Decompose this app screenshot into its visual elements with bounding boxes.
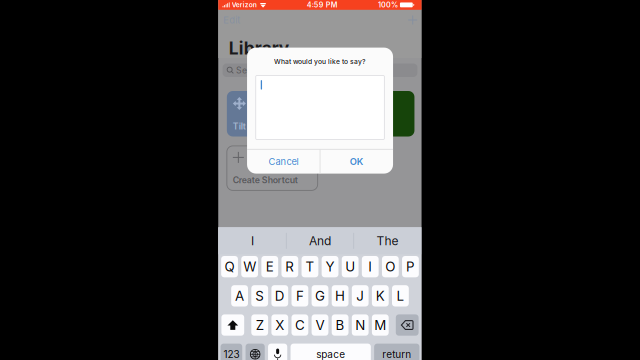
button[interactable]: Delete [396, 314, 419, 336]
staticText: 123 [223, 348, 239, 360]
staticText: Y [325, 259, 334, 275]
staticText: Edit [223, 14, 240, 26]
staticText: return [382, 348, 411, 360]
staticText: Library [229, 38, 289, 59]
button[interactable]: A [231, 285, 248, 306]
button[interactable]: D [271, 285, 288, 306]
button[interactable]: Edit [218, 14, 245, 26]
staticText: And [309, 233, 331, 248]
staticText: B [336, 317, 345, 333]
button[interactable]: I [362, 256, 379, 277]
button[interactable]: 123 [221, 344, 242, 360]
staticText: What would you like to say? [274, 58, 366, 66]
button[interactable]: X [271, 314, 288, 336]
staticText: E [266, 259, 274, 275]
button[interactable]: T [301, 256, 318, 277]
staticText: H [335, 288, 345, 304]
button[interactable]: The [354, 227, 421, 254]
button[interactable]: J [352, 285, 369, 306]
staticText: J [356, 288, 364, 304]
staticText: W [243, 259, 256, 275]
staticText: Cancel [268, 156, 298, 167]
staticText: OK [350, 156, 364, 167]
button[interactable]: H [332, 285, 348, 306]
button[interactable]: L [392, 285, 409, 306]
staticText: T [305, 259, 314, 275]
button[interactable]: W [241, 256, 258, 277]
button[interactable]: P [402, 256, 419, 277]
button[interactable]: B [332, 314, 348, 336]
button[interactable]: And [287, 227, 353, 254]
staticText: Tilt Screen [233, 121, 277, 131]
staticText: I [251, 233, 254, 248]
button[interactable]: Cancel [247, 150, 320, 174]
staticText: Verizon [232, 1, 257, 9]
button[interactable]: N [352, 314, 369, 336]
button[interactable]: C [291, 314, 308, 336]
staticText: R [285, 259, 294, 275]
button[interactable]: OK [320, 150, 393, 174]
button[interactable]: G [312, 285, 328, 306]
button[interactable]: M [372, 314, 389, 336]
button[interactable]: Add shortcut [404, 14, 422, 26]
staticText: 100% [378, 0, 398, 9]
button[interactable]: space [291, 344, 371, 360]
staticText: S [255, 288, 264, 304]
staticText: Create Shortcut [233, 175, 298, 185]
staticText: C [295, 317, 305, 333]
button[interactable]: Shift [221, 314, 244, 336]
button[interactable]: return [374, 344, 419, 360]
button[interactable]: Dictation [268, 344, 287, 360]
staticText: space [316, 348, 345, 360]
button[interactable]: Create Shortcut [227, 146, 318, 190]
staticText: O [385, 259, 395, 275]
staticText: G [315, 288, 325, 304]
button[interactable]: Record Audio [324, 91, 414, 136]
staticText: M [374, 317, 386, 333]
staticText: I [368, 259, 372, 275]
staticText: Z [256, 317, 264, 333]
button[interactable]: E [261, 256, 278, 277]
button[interactable]: K [372, 285, 389, 306]
staticText: V [315, 317, 324, 333]
staticText: Search [236, 65, 265, 75]
button[interactable]: Z [251, 314, 268, 336]
button[interactable]: Change keyboard [246, 344, 265, 360]
staticText: X [275, 317, 284, 333]
button[interactable]: V [312, 314, 328, 336]
button[interactable]: Y [322, 256, 338, 277]
button[interactable]: O [382, 256, 399, 277]
button[interactable]: S [251, 285, 268, 306]
button[interactable]: F [291, 285, 308, 306]
button[interactable]: I [219, 227, 286, 254]
button[interactable]: U [342, 256, 359, 277]
staticText: L [396, 288, 404, 304]
button[interactable]: Tilt Screen [227, 91, 318, 136]
staticText: A [235, 288, 244, 304]
staticText: The [376, 233, 398, 248]
button[interactable]: R [281, 256, 298, 277]
staticText: U [345, 259, 355, 275]
staticText: K [376, 288, 385, 304]
staticText: D [275, 288, 285, 304]
staticText: F [296, 288, 304, 304]
staticText: P [406, 259, 415, 275]
staticText: 4:59 PM [307, 0, 338, 9]
staticText: N [355, 317, 365, 333]
staticText: Q [224, 259, 234, 275]
button[interactable]: Q [221, 256, 238, 277]
